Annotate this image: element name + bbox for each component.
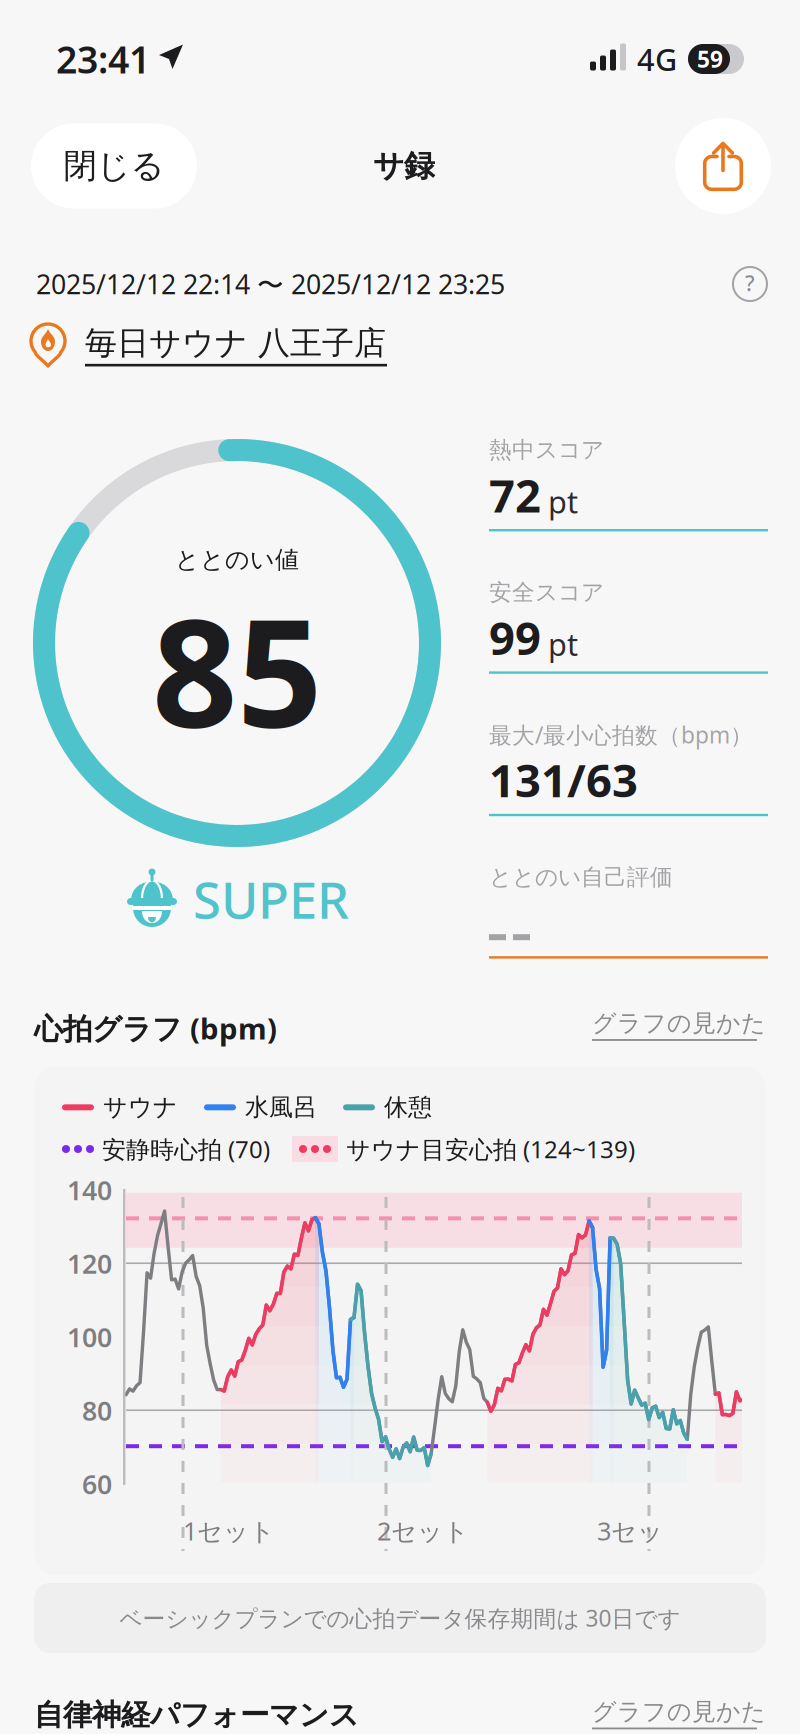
staticText: 閉じる: [63, 145, 164, 186]
button[interactable]: Share: [675, 118, 771, 214]
staticText: SUPER: [193, 865, 349, 933]
staticText: 毎日サウナ 八王子店: [85, 323, 386, 363]
button[interactable]: グラフの見かた: [592, 1009, 766, 1041]
staticText: 自律神経パフォーマンス: [34, 1697, 359, 1733]
staticText: 131/63: [489, 750, 638, 810]
staticText: 最大/最小心拍数（bpm）: [489, 720, 753, 750]
staticText: 心拍グラフ (bpm): [34, 1009, 277, 1048]
staticText: ?: [745, 269, 755, 297]
staticText: ととのい自己評価: [489, 863, 673, 891]
button[interactable]: 毎日サウナ 八王子店: [0, 320, 800, 370]
staticText: 59: [697, 44, 723, 74]
staticText: ベーシックプランでの心拍データ保存期間は 30日です: [119, 1603, 680, 1633]
staticText: 100: [67, 1319, 112, 1355]
staticText: 140: [67, 1172, 112, 1208]
staticText: 60: [82, 1466, 112, 1502]
staticText: 120: [67, 1246, 112, 1281]
staticText: 1セット: [183, 1514, 275, 1548]
staticText: 安全スコア: [489, 578, 604, 606]
staticText: 80: [82, 1393, 112, 1428]
staticText: 2セット: [377, 1514, 469, 1548]
staticText: 3セッ: [597, 1514, 663, 1548]
button[interactable]: グラフの見かた: [592, 1697, 766, 1729]
staticText: 水風呂: [245, 1093, 317, 1122]
staticText: 安静時心拍 (70): [102, 1133, 270, 1165]
staticText: 99: [489, 607, 541, 667]
staticText: 休憩: [384, 1093, 432, 1122]
staticText: 72: [489, 465, 541, 525]
staticText: サ録: [373, 147, 435, 185]
staticText: pt: [548, 481, 578, 522]
staticText: サウナ: [103, 1093, 178, 1122]
staticText: 85: [152, 571, 322, 769]
staticText: ととのい値: [175, 545, 299, 575]
staticText: pt: [548, 624, 578, 664]
staticText: 熱中スコア: [489, 436, 604, 464]
staticText: 2025/12/12 22:14 〜 2025/12/12 23:25: [36, 266, 505, 302]
button[interactable]: Help: [730, 264, 770, 304]
staticText: グラフの見かた: [592, 1697, 766, 1727]
staticText: 23:41: [56, 34, 150, 84]
staticText: グラフの見かた: [592, 1009, 766, 1038]
button[interactable]: 閉じる: [31, 123, 197, 208]
staticText: サウナ目安心拍 (124~139): [346, 1133, 635, 1165]
staticText: 4G: [637, 39, 677, 79]
